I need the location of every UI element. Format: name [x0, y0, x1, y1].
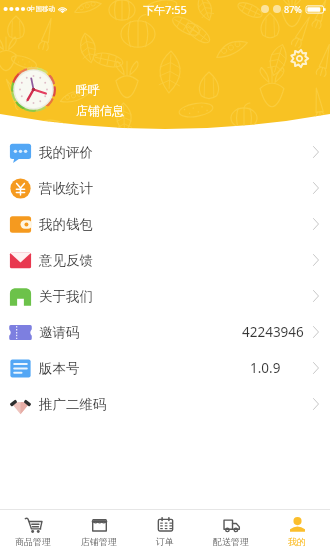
staticText: 我的评价 [39, 144, 93, 161]
staticText: 订单 [156, 536, 174, 547]
button[interactable]: Shop avatar [11, 67, 56, 112]
button[interactable]: 店铺管理 [66, 510, 132, 550]
button[interactable]: 商品管理 [0, 510, 66, 550]
staticText: 商品管理 [15, 536, 51, 547]
button[interactable]: 意见反馈 [0, 242, 330, 278]
staticText: 我的 [288, 536, 306, 547]
button[interactable]: 版本号 [0, 350, 330, 386]
staticText: 1.0.9 [250, 359, 281, 377]
staticText: 意见反馈 [39, 252, 93, 269]
button[interactable]: 关于我们 [0, 278, 330, 314]
staticText: 关于我们 [39, 288, 93, 305]
staticText: 营收统计 [39, 180, 93, 197]
button[interactable]: Settings [290, 49, 309, 68]
staticText: 邀请码 [39, 324, 80, 341]
staticText: 87% [284, 3, 302, 15]
staticText: 推广二维码 [39, 396, 107, 413]
staticText: 店铺管理 [81, 536, 117, 547]
staticText: 我的钱包 [39, 216, 93, 233]
staticText: 版本号 [39, 360, 80, 377]
staticText: 配送管理 [213, 536, 249, 547]
button[interactable]: 营收统计 [0, 170, 330, 206]
button[interactable]: 我的评价 [0, 134, 330, 170]
staticText: 店铺信息 [76, 103, 124, 118]
button[interactable]: 配送管理 [198, 510, 264, 550]
staticText: 呼呼 [76, 82, 100, 97]
staticText: 下午7:55 [143, 2, 187, 17]
staticText: 42243946 [242, 323, 304, 341]
button[interactable]: 订单 [132, 510, 198, 550]
button[interactable]: 我的钱包 [0, 206, 330, 242]
button[interactable]: 邀请码 [0, 314, 330, 350]
button[interactable]: 推广二维码 [0, 386, 330, 422]
button[interactable]: 我的 [264, 510, 330, 550]
staticText: 中国移动 [29, 5, 55, 13]
